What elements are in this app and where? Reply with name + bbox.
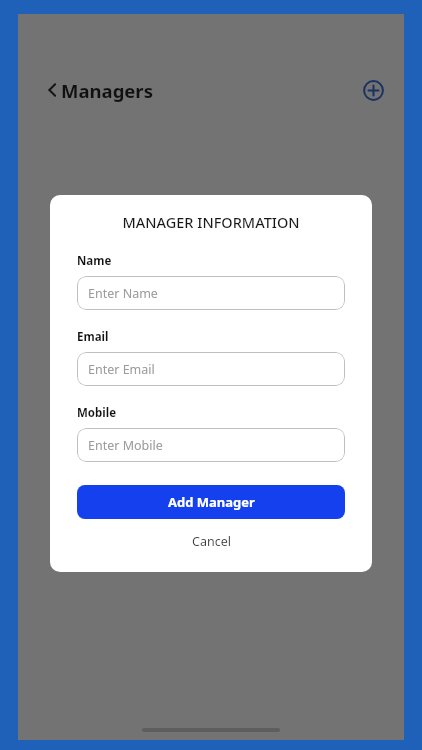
staticText: Cancel xyxy=(192,533,231,550)
button[interactable]: Add Manager xyxy=(77,485,345,519)
button[interactable]: Enter Email xyxy=(77,352,345,386)
staticText: Enter Name xyxy=(88,285,158,302)
staticText: MANAGER INFORMATION xyxy=(77,212,345,232)
staticText: Enter Mobile xyxy=(88,437,163,454)
staticText: Email xyxy=(77,329,109,345)
button[interactable]: Enter Name xyxy=(77,276,345,310)
staticText: Add Manager xyxy=(168,493,255,511)
button[interactable]: Back xyxy=(36,73,70,107)
staticText: Name xyxy=(77,253,112,269)
staticText: Enter Email xyxy=(88,361,155,378)
button[interactable]: Cancel xyxy=(77,528,345,554)
button[interactable]: Enter Mobile xyxy=(77,428,345,462)
button[interactable]: Add manager xyxy=(356,73,390,107)
staticText: Managers xyxy=(61,78,153,103)
staticText: Mobile xyxy=(77,405,117,421)
